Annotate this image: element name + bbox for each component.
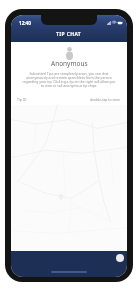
button[interactable]: New chat [116, 254, 124, 262]
staticText: double-tap to view [90, 97, 120, 102]
staticText: Submitted Tips are completely anon, you … [21, 71, 117, 88]
staticText: Anonymous [51, 59, 88, 68]
staticText: 12:40 [19, 20, 31, 26]
staticText: Tip ID [17, 97, 27, 102]
staticText: TIP CHAT [56, 31, 82, 38]
